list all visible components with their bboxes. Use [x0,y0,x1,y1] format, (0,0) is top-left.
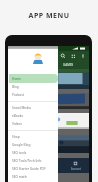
staticText: Account [71,167,81,171]
staticText: WATCH [23,63,34,67]
button[interactable]: Explore [35,158,62,173]
button[interactable]: More options [80,53,86,59]
staticText: Home [12,77,22,81]
staticText: Social Media [12,106,31,110]
staticText: Shop [12,135,20,139]
staticText: GAMES [63,63,74,67]
button[interactable]: Apps [70,53,76,59]
staticText: Home [18,167,26,171]
button[interactable]: Home [8,158,35,173]
staticText: SEO Tools/Tech Info [12,159,42,163]
button[interactable]: WATCH [8,61,48,69]
button[interactable]: Blog [8,83,58,91]
button[interactable]: eBooks [8,112,58,120]
staticText: Google Blog [12,143,31,147]
button[interactable]: Podcast [8,91,58,99]
button[interactable] [8,93,89,109]
button[interactable]: SEO Starter Guide PDF [8,165,58,173]
button[interactable]: Search [60,53,66,59]
staticText: Explore [44,167,54,171]
staticText: SEO Starter Guide PDF [12,167,46,171]
button[interactable] [8,135,89,153]
button[interactable]: Social Media [8,104,58,112]
staticText: SEO math [12,175,27,179]
button[interactable]: SEO math [8,173,58,181]
staticText: SEO tools [12,151,27,155]
button[interactable]: SEO Tools/Tech Info [8,157,58,165]
staticText: Podcast [12,93,24,97]
button[interactable] [8,69,89,89]
button[interactable]: SEO tools [8,149,58,157]
button[interactable]: Videos [8,120,58,128]
button[interactable]: Google Blog [8,141,58,149]
button[interactable] [8,113,89,129]
staticText: Blog [12,85,19,89]
button[interactable]: GAMES [48,61,89,69]
staticText: eBooks [12,114,23,118]
button[interactable]: Shop [8,133,58,141]
button[interactable]: Account [62,158,89,173]
staticText: APP MENU [0,11,98,21]
button[interactable]: Home [9,74,58,83]
staticText: Videos [12,122,22,126]
